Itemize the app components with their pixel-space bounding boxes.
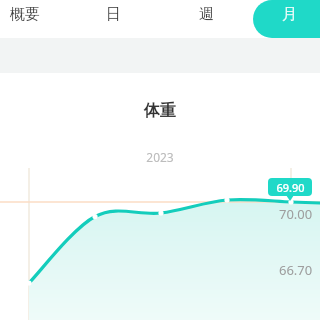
staticText: 66.70 <box>279 261 313 279</box>
staticText: 月 <box>282 5 297 24</box>
button[interactable]: 概要 <box>0 0 68 38</box>
staticText: 概要 <box>10 5 40 24</box>
staticText: 70.00 <box>279 205 313 223</box>
staticText: 体重 <box>144 101 176 121</box>
staticText: 69.90 <box>276 180 305 195</box>
button[interactable]: 日 <box>88 0 148 38</box>
staticText: 日 <box>106 5 121 24</box>
staticText: 2023 <box>146 149 174 165</box>
button[interactable]: 月 <box>253 0 320 38</box>
button[interactable]: 週 <box>180 0 240 38</box>
staticText: 週 <box>199 5 214 24</box>
button[interactable]: 69.90 <box>268 178 312 196</box>
